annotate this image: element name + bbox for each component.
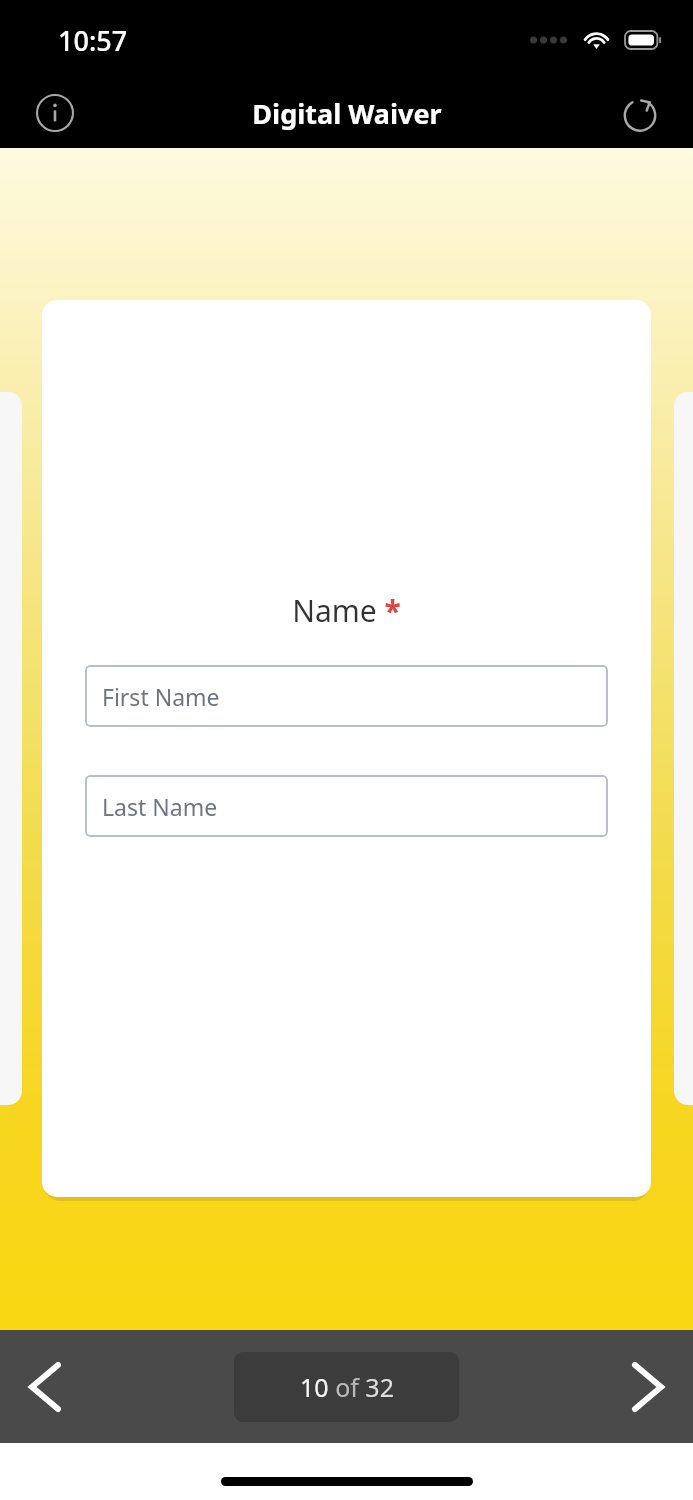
staticText: 10 of 32 <box>300 1370 394 1404</box>
staticText: Name * <box>292 590 401 631</box>
button[interactable]: Information <box>24 82 86 144</box>
staticText: Digital Waiver <box>252 95 442 132</box>
button[interactable]: 10 of 32 <box>234 1352 459 1422</box>
staticText: Last Name <box>102 791 218 822</box>
staticText: 10:57 <box>58 22 128 59</box>
button[interactable]: Last Name <box>85 775 608 837</box>
button[interactable]: Previous page <box>6 1348 84 1426</box>
button[interactable]: Next page <box>609 1348 687 1426</box>
button[interactable]: First Name <box>85 665 608 727</box>
staticText: First Name <box>102 681 220 712</box>
button[interactable]: Refresh <box>609 82 671 144</box>
